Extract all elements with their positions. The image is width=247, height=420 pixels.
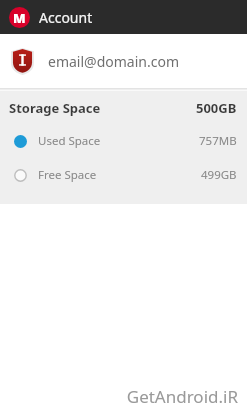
staticText: 499GB <box>201 167 237 183</box>
button[interactable]: Free Space <box>0 165 247 185</box>
staticText: 500GB <box>196 99 237 117</box>
other: MEGA logo <box>9 7 30 28</box>
staticText: M <box>13 9 26 27</box>
button[interactable]: Used Space <box>0 131 247 151</box>
staticText: Account <box>39 8 93 27</box>
staticText: 757MB <box>199 133 237 149</box>
staticText: Free Space <box>38 167 97 183</box>
other: Account shield <box>11 48 34 75</box>
staticText: Used Space <box>38 133 101 149</box>
staticText: GetAndroid.iR <box>126 385 238 408</box>
button[interactable]: Account shield <box>0 34 247 88</box>
staticText: Storage Space <box>9 99 101 117</box>
staticText: email@domain.com <box>48 52 179 71</box>
